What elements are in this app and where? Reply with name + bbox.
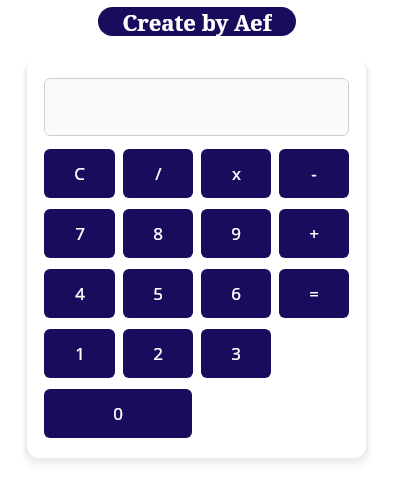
button[interactable]: Create by Aef [98,7,296,36]
button[interactable]: 5 [123,269,193,318]
staticText: C [74,162,85,185]
button[interactable]: 8 [123,209,193,258]
button[interactable]: 7 [44,209,115,258]
button[interactable]: / [123,149,193,198]
staticText: / [155,162,162,185]
staticText: = [309,282,319,305]
staticText: 2 [153,342,163,365]
button[interactable]: 2 [123,329,193,378]
staticText: + [309,222,319,245]
button[interactable] [44,78,349,136]
staticText: x [232,162,241,185]
staticText: 1 [75,342,85,365]
staticText: - [311,162,317,185]
button[interactable]: = [279,269,349,318]
staticText: 5 [153,282,163,305]
staticText: Create by Aef [122,7,272,36]
staticText: 7 [75,222,85,245]
staticText: 3 [231,342,241,365]
button[interactable]: 0 [44,389,192,438]
button[interactable]: + [279,209,349,258]
staticText: 8 [153,222,163,245]
staticText: 9 [231,222,241,245]
button[interactable]: - [279,149,349,198]
button[interactable]: 6 [201,269,271,318]
button[interactable]: 3 [201,329,271,378]
button[interactable]: 1 [44,329,115,378]
button[interactable]: 9 [201,209,271,258]
staticText: 6 [231,282,241,305]
button[interactable]: 4 [44,269,115,318]
staticText: 0 [113,402,123,425]
button[interactable]: x [201,149,271,198]
staticText: 4 [75,282,85,305]
button[interactable]: C [44,149,115,198]
